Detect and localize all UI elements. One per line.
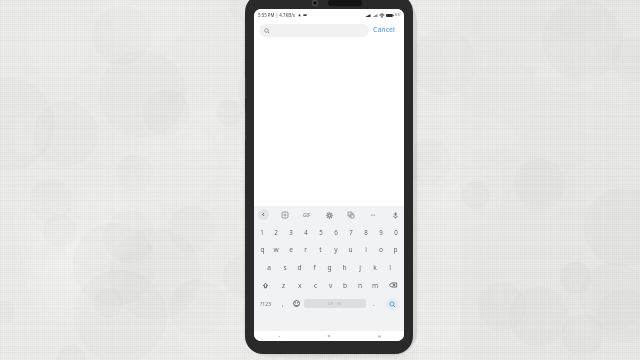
button[interactable]: c	[308, 276, 323, 294]
staticText: t	[319, 245, 322, 254]
staticText: e	[289, 245, 293, 254]
button[interactable]: w	[269, 240, 283, 258]
staticText: 5	[319, 228, 323, 236]
staticText: ?123	[260, 300, 272, 307]
button[interactable]: Settings	[324, 210, 334, 220]
staticText: r	[304, 245, 307, 254]
button[interactable]: k	[367, 258, 382, 276]
staticText: b	[343, 281, 348, 290]
button[interactable]: 3	[283, 223, 298, 240]
button[interactable]: Voice input	[390, 210, 400, 220]
staticText: z	[282, 281, 286, 290]
button[interactable]: 4	[298, 223, 313, 240]
button[interactable]: Stickers	[280, 210, 290, 220]
button[interactable]: Backspace	[383, 276, 403, 294]
button[interactable]: .	[366, 294, 381, 313]
staticText: v	[329, 281, 333, 290]
button[interactable]: u	[343, 240, 358, 258]
button[interactable]: Back	[258, 209, 269, 220]
button[interactable]: g	[322, 258, 337, 276]
staticText: 7	[349, 228, 353, 236]
button[interactable]: h	[337, 258, 352, 276]
staticText: 2	[274, 228, 278, 236]
staticText: 0	[394, 228, 398, 236]
staticText: 5:55 PM | 4.7KB/s	[258, 12, 295, 18]
button[interactable]: Recents	[354, 331, 404, 341]
staticText: 4	[304, 228, 308, 236]
button[interactable]: m	[368, 276, 383, 294]
button[interactable]: Home	[304, 331, 354, 341]
staticText: g	[327, 263, 332, 272]
staticText: w	[273, 245, 279, 254]
staticText: 6	[334, 228, 338, 236]
button[interactable]: v	[323, 276, 338, 294]
staticText: 65	[395, 12, 400, 18]
button[interactable]: 5	[313, 223, 328, 240]
staticText: .	[373, 299, 375, 308]
staticText: 8	[364, 228, 368, 236]
button[interactable]: 1	[255, 223, 269, 240]
staticText: 9	[379, 228, 383, 236]
staticText: h	[342, 263, 347, 272]
button[interactable]: s	[277, 258, 292, 276]
button[interactable]: Emoji	[289, 294, 304, 313]
button[interactable]: GIF	[301, 210, 313, 220]
button[interactable]: 7	[343, 223, 358, 240]
button[interactable]: Translate	[346, 210, 356, 220]
staticText: d	[297, 263, 302, 272]
button[interactable]: 8	[358, 223, 373, 240]
staticText: ,	[282, 299, 284, 308]
staticText: s	[283, 263, 287, 272]
button[interactable]	[259, 24, 369, 37]
staticText: Cancel	[373, 25, 395, 35]
button[interactable]: a	[261, 258, 277, 276]
staticText: i	[365, 245, 367, 254]
button[interactable]: i	[358, 240, 373, 258]
button[interactable]: x	[292, 276, 308, 294]
staticText: p	[393, 245, 398, 254]
staticText: 1	[260, 228, 264, 236]
staticText: q	[260, 245, 265, 254]
staticText: 3	[289, 228, 293, 236]
button[interactable]: j	[352, 258, 367, 276]
button[interactable]: More options	[368, 210, 378, 220]
staticText: n	[358, 281, 363, 290]
button[interactable]: ?123	[256, 294, 276, 313]
button[interactable]: Back	[254, 331, 304, 341]
button[interactable]: 9	[373, 223, 388, 240]
button[interactable]: q	[255, 240, 269, 258]
button[interactable]: Search	[381, 294, 402, 313]
staticText: f	[313, 263, 316, 272]
staticText: y	[334, 245, 338, 254]
button[interactable]: Shift	[255, 276, 276, 294]
button[interactable]: d	[292, 258, 307, 276]
button[interactable]: Space	[304, 299, 366, 308]
staticText: m	[372, 281, 379, 290]
staticText: o	[379, 245, 383, 254]
button[interactable]: n	[353, 276, 368, 294]
button[interactable]: y	[328, 240, 343, 258]
button[interactable]: Cancel	[369, 22, 399, 38]
button[interactable]: b	[338, 276, 353, 294]
button[interactable]: f	[307, 258, 322, 276]
staticText: k	[373, 263, 377, 272]
button[interactable]: p	[388, 240, 403, 258]
button[interactable]: z	[276, 276, 292, 294]
button[interactable]: 2	[269, 223, 283, 240]
staticText: GIF	[303, 212, 311, 218]
button[interactable]: o	[373, 240, 388, 258]
button[interactable]: ,	[276, 294, 289, 313]
staticText: c	[314, 281, 318, 290]
button[interactable]: e	[283, 240, 298, 258]
button[interactable]: r	[298, 240, 313, 258]
button[interactable]: l	[382, 258, 397, 276]
staticText: u	[348, 245, 353, 254]
button[interactable]: 0	[388, 223, 403, 240]
button[interactable]: 6	[328, 223, 343, 240]
staticText: l	[389, 263, 391, 272]
button[interactable]: t	[313, 240, 328, 258]
staticText: j	[359, 263, 361, 272]
staticText: EN · HI	[328, 301, 342, 307]
staticText: x	[298, 281, 302, 290]
staticText: a	[267, 263, 271, 272]
